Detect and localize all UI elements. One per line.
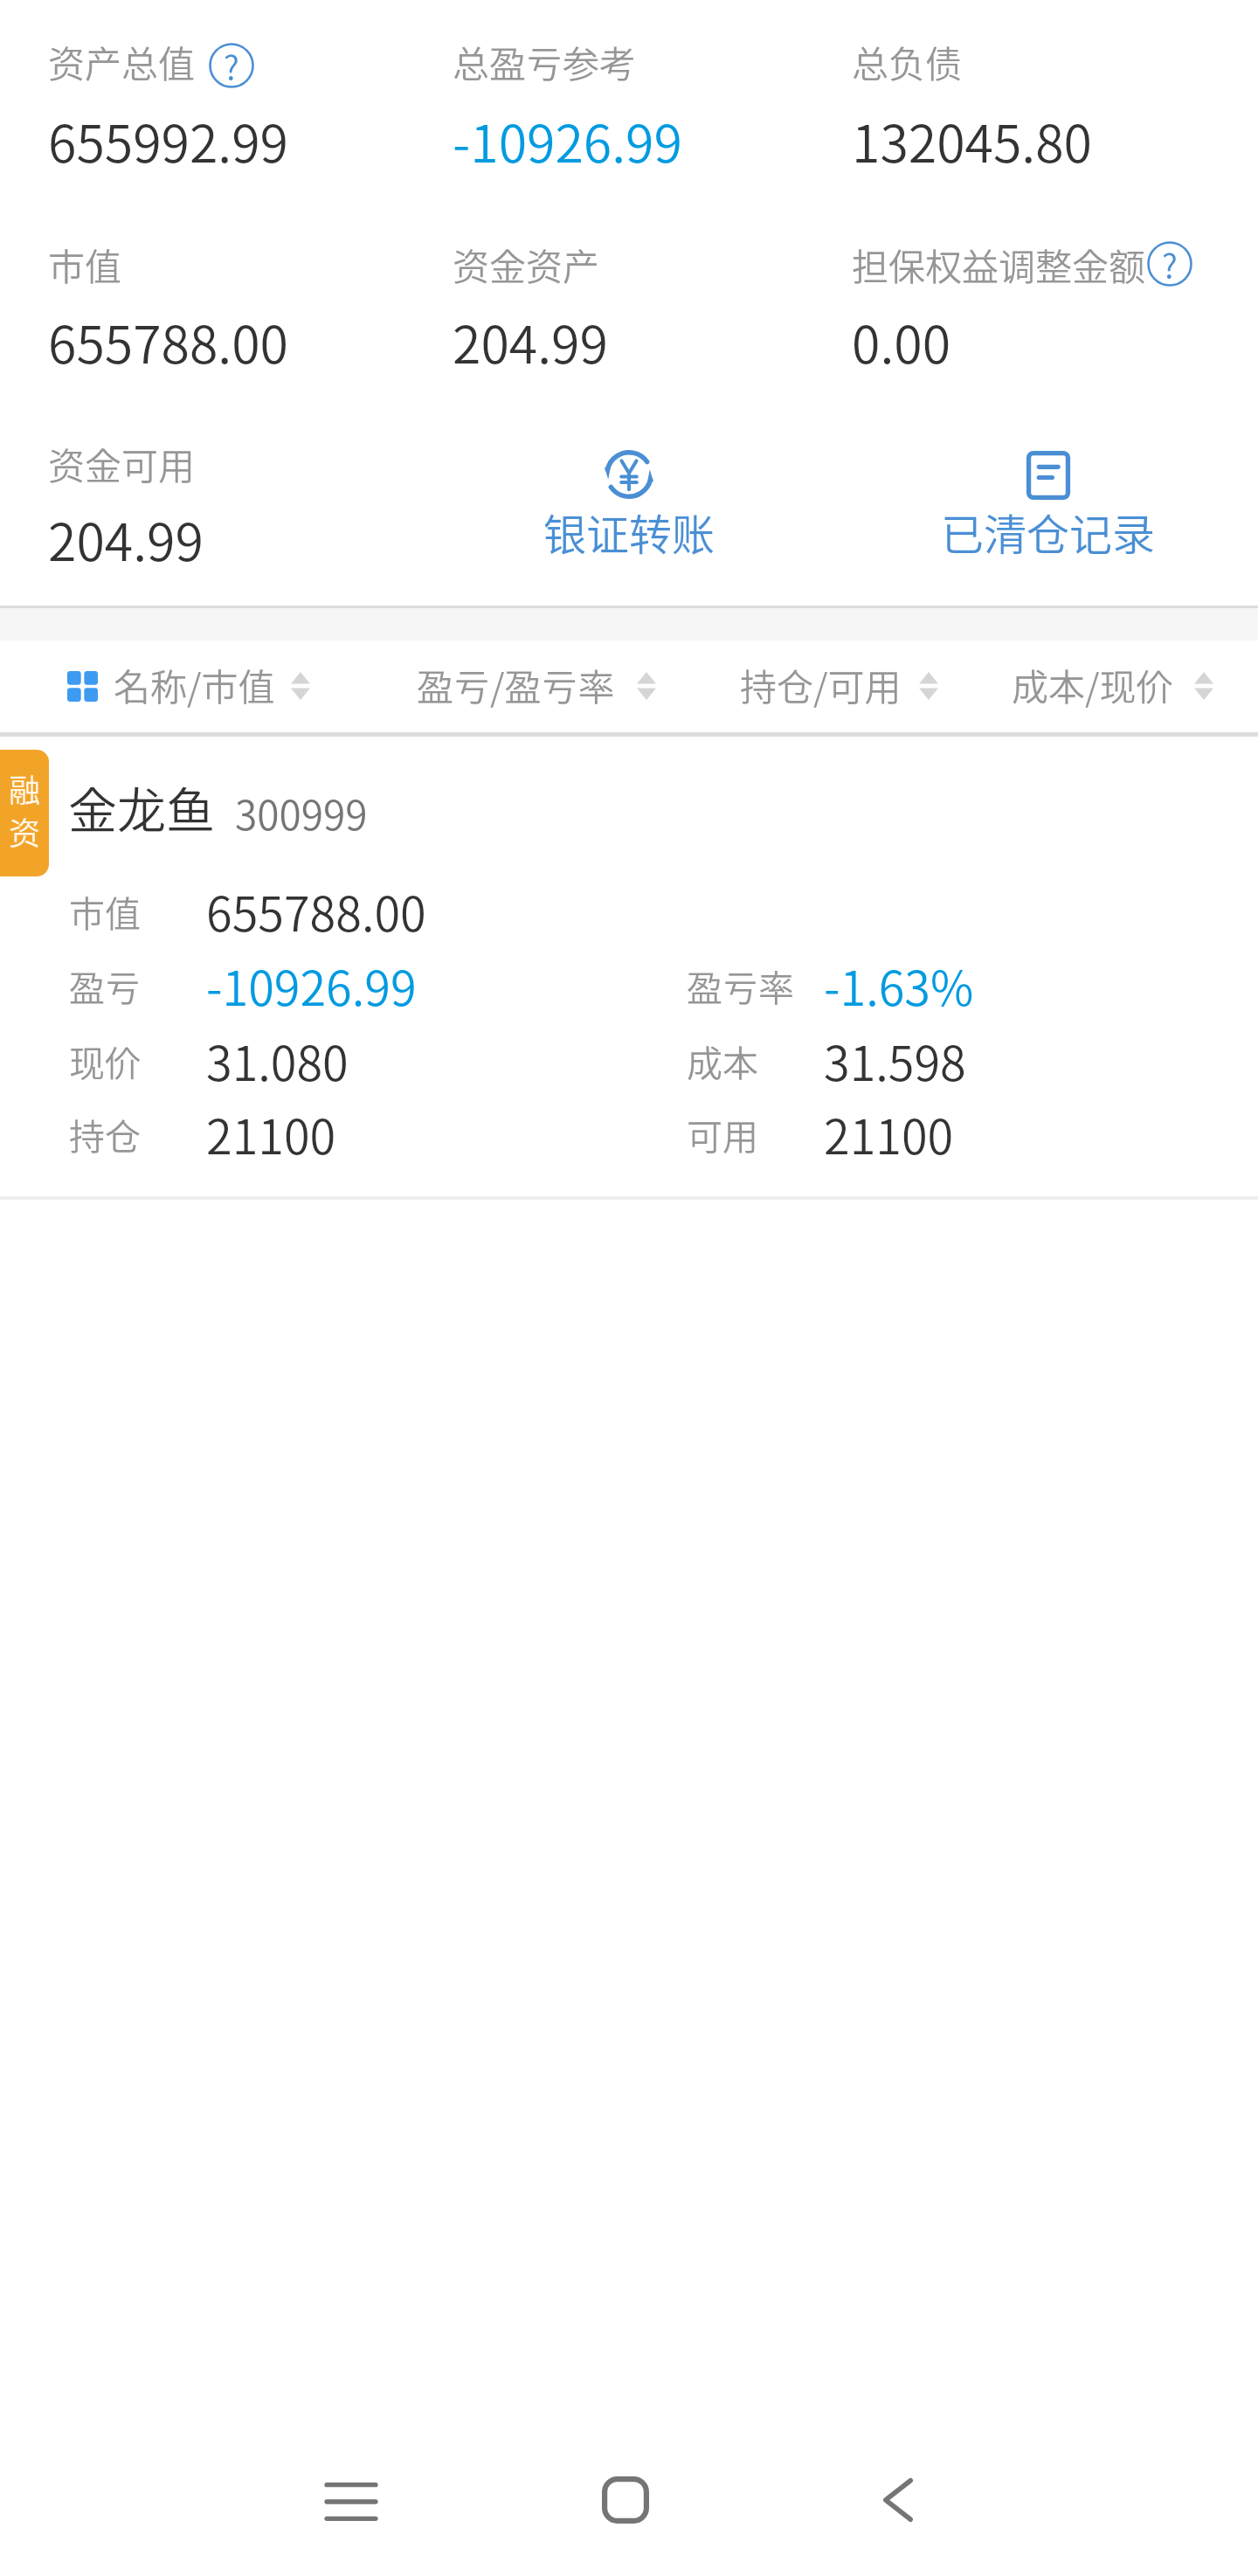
staticText: -10926.99 — [206, 951, 417, 1019]
button[interactable] — [101, 651, 324, 724]
staticText: 655992.99 — [48, 103, 288, 177]
staticText: 300999 — [235, 784, 368, 842]
staticText: 31.080 — [206, 1026, 349, 1094]
staticText: 204.99 — [48, 502, 204, 576]
staticText: 已清仓记录 — [941, 501, 1156, 563]
button[interactable] — [404, 651, 670, 724]
staticText: 担保权益调整金额 — [852, 238, 1146, 291]
staticText: ? — [224, 42, 239, 87]
staticText: 总负债 — [852, 35, 963, 88]
button[interactable]: Home — [578, 2462, 673, 2538]
staticText: 21100 — [206, 1099, 336, 1167]
staticText: 持仓 — [69, 1108, 141, 1160]
button[interactable]: 银证转账 — [524, 449, 734, 563]
button[interactable] — [999, 651, 1227, 724]
staticText: -10926.99 — [453, 103, 682, 177]
staticText: 金龙鱼 — [68, 772, 215, 842]
staticText: 0.00 — [852, 304, 951, 378]
button[interactable]: 说明 — [209, 43, 254, 88]
staticText: 132045.80 — [852, 103, 1092, 177]
button[interactable] — [0, 737, 1258, 1196]
other: 银证转账 — [604, 449, 654, 500]
staticText: 融 — [9, 765, 41, 811]
staticText: 资产总值 — [48, 35, 196, 88]
staticText: 资 — [9, 808, 41, 854]
staticText: -1.63% — [824, 951, 974, 1019]
button[interactable]: Back — [851, 2462, 945, 2538]
staticText: 银证转账 — [543, 501, 715, 563]
staticText: 31.598 — [824, 1026, 966, 1094]
staticText: 204.99 — [453, 304, 608, 378]
staticText: ? — [1162, 240, 1178, 286]
button[interactable]: 已清仓记录 — [926, 451, 1171, 563]
staticText: 655788.00 — [206, 876, 426, 945]
staticText: 可用 — [687, 1108, 758, 1160]
staticText: 名称/市值 — [114, 658, 275, 711]
staticText: 盈亏/盈亏率 — [417, 658, 615, 711]
staticText: 21100 — [824, 1099, 954, 1167]
button[interactable]: 说明 — [1147, 241, 1192, 287]
staticText: 655788.00 — [48, 304, 288, 378]
button[interactable]: 融 — [0, 750, 49, 876]
other: 已清仓记录 — [1025, 451, 1072, 500]
staticText: 市值 — [48, 238, 122, 291]
staticText: 总盈亏参考 — [453, 35, 637, 88]
staticText: 盈亏率 — [687, 959, 794, 1011]
staticText: 资金可用 — [48, 437, 196, 490]
staticText: 持仓/可用 — [740, 658, 902, 711]
button[interactable] — [728, 651, 952, 724]
staticText: 成本 — [687, 1035, 758, 1086]
other: 切换视图 — [67, 671, 98, 702]
staticText: 成本/现价 — [1012, 658, 1173, 711]
staticText: 盈亏 — [69, 959, 141, 1011]
staticText: 资金资产 — [453, 238, 600, 291]
button[interactable]: Recents — [304, 2464, 398, 2539]
staticText: 市值 — [69, 885, 141, 937]
staticText: 现价 — [69, 1035, 141, 1086]
